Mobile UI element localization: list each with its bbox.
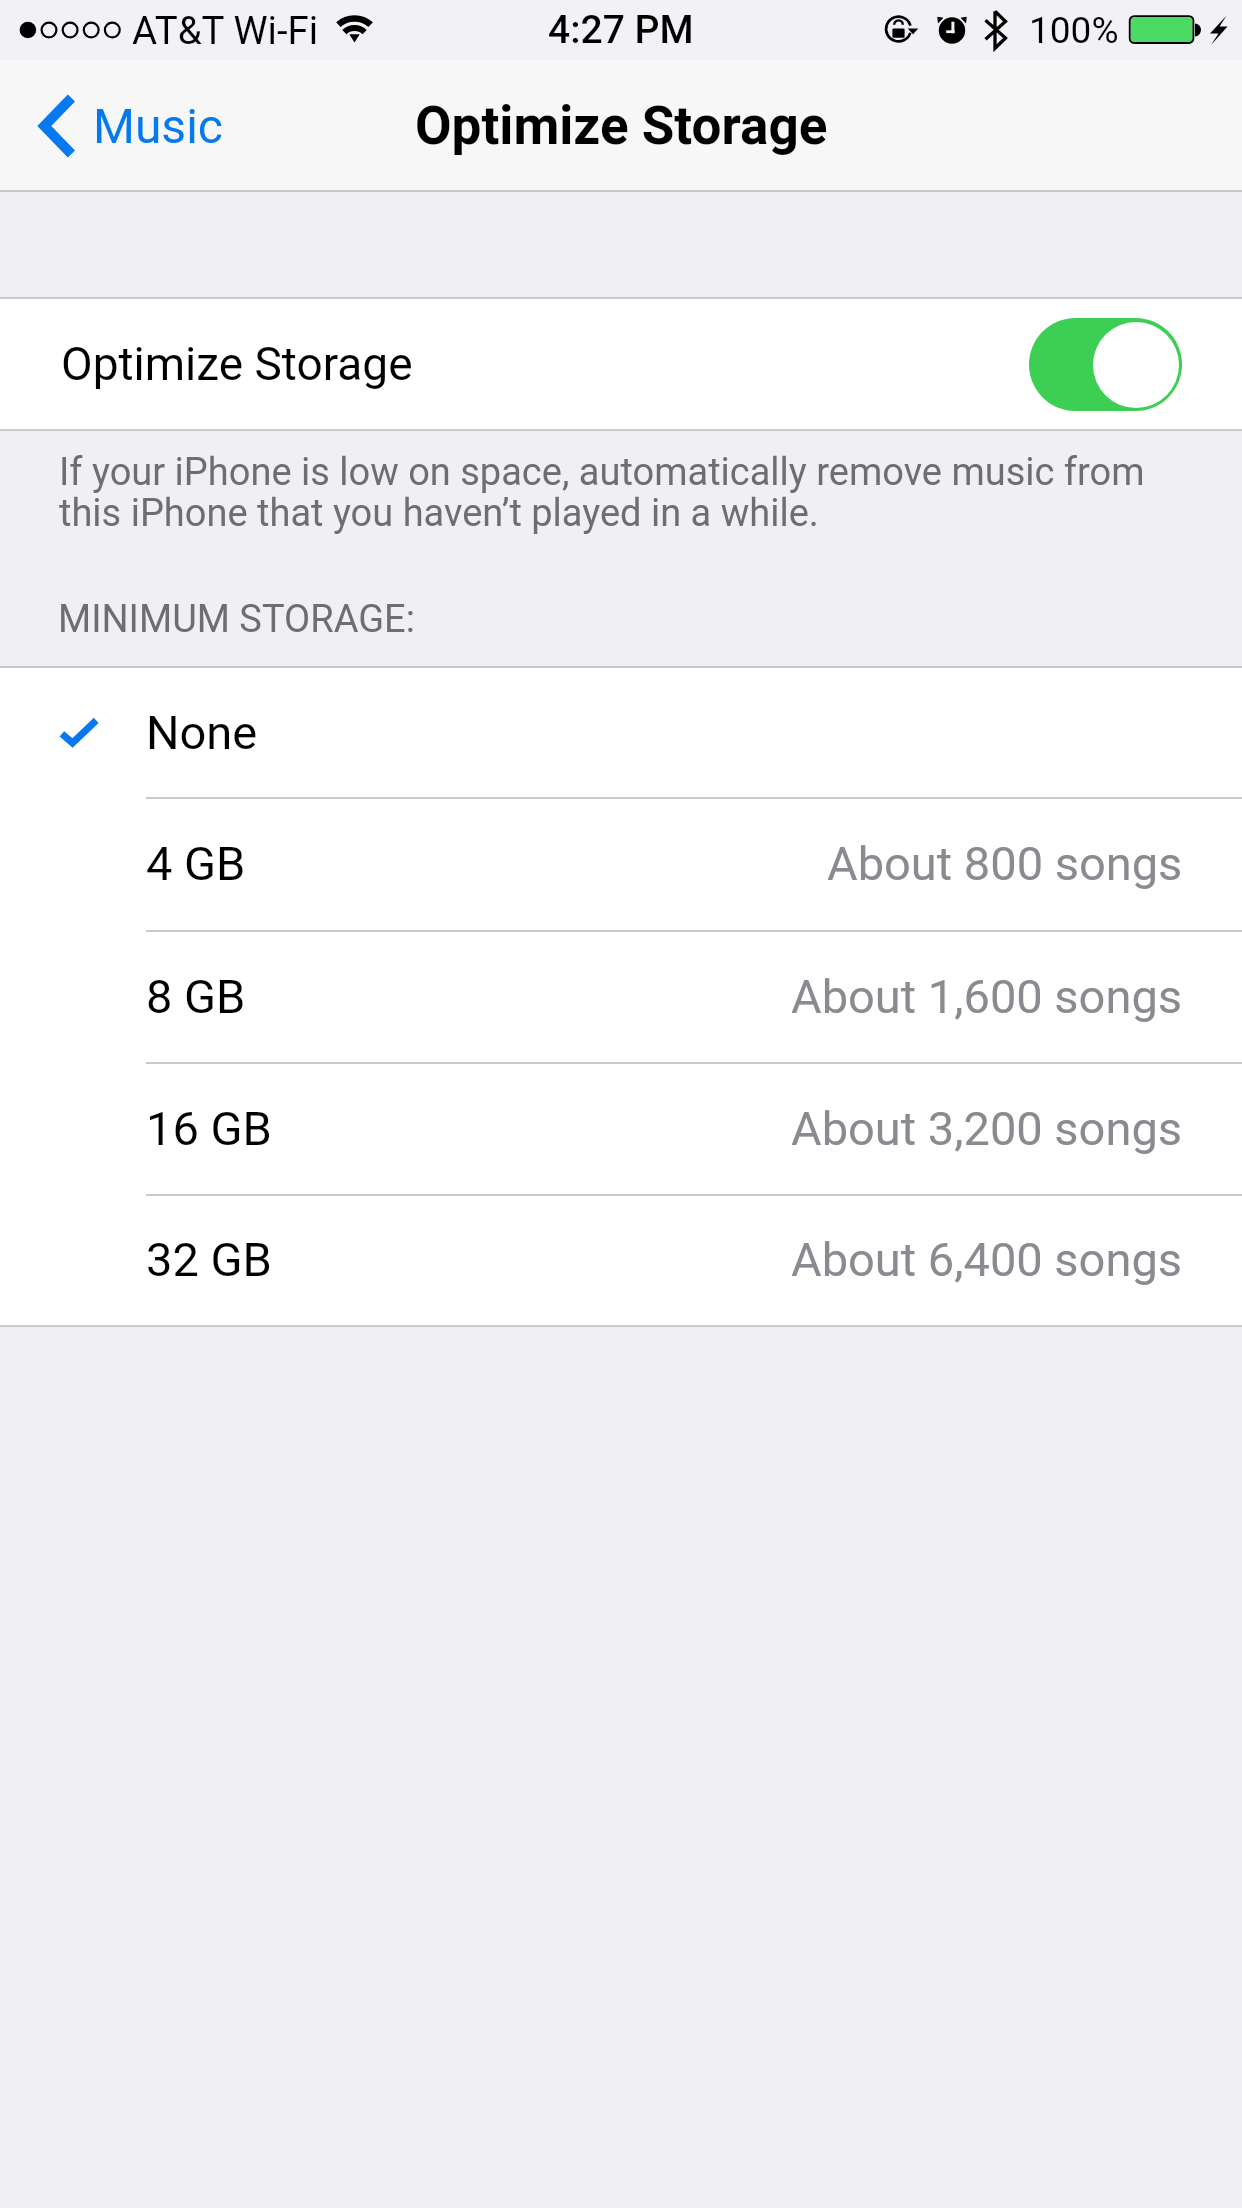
staticText: 16 GB [146, 1101, 272, 1156]
button[interactable]: None [0, 668, 1242, 797]
staticText: Optimize Storage [415, 95, 828, 157]
staticText: MINIMUM STORAGE: [58, 597, 415, 642]
button[interactable]: 4 GB [0, 797, 1242, 930]
staticText: About 6,400 songs [791, 1232, 1183, 1287]
button[interactable]: 8 GB [0, 930, 1242, 1062]
staticText: Optimize Storage [61, 337, 413, 391]
staticText: Music [93, 98, 223, 154]
staticText: 8 GB [146, 969, 246, 1024]
staticText: 4 GB [146, 836, 246, 891]
staticText: AT&T Wi-Fi [132, 8, 319, 53]
staticText: About 1,600 songs [791, 969, 1183, 1024]
button[interactable]: Optimize Storage [0, 299, 1242, 429]
staticText: If your iPhone is low on space, automati… [59, 450, 1152, 535]
staticText: 100% [1029, 9, 1119, 52]
button[interactable]: Optimize Storage toggle, on [1029, 318, 1182, 411]
staticText: About 800 songs [827, 836, 1183, 891]
staticText: 32 GB [146, 1232, 272, 1287]
button[interactable]: 16 GB [0, 1062, 1242, 1194]
button[interactable]: 32 GB [0, 1194, 1242, 1325]
staticText: About 3,200 songs [791, 1101, 1183, 1156]
staticText: None [146, 705, 258, 760]
button[interactable]: Music [0, 90, 223, 162]
staticText: 4:27 PM [548, 7, 694, 53]
